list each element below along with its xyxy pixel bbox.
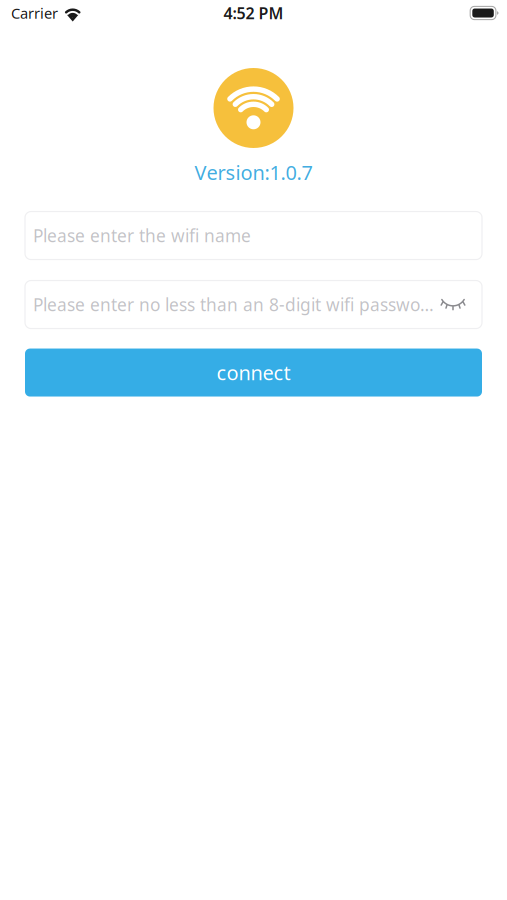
staticText: Carrier (11, 3, 58, 23)
staticText: 4:52 PM (223, 2, 283, 24)
staticText: connect (216, 359, 290, 386)
staticText: Please enter the wifi name (33, 224, 251, 247)
button[interactable]: connect (25, 349, 482, 397)
staticText: Version:1.0.7 (194, 159, 312, 186)
staticText: Please enter no less than an 8-digit wif… (33, 293, 434, 316)
button[interactable]: Show password (441, 287, 474, 322)
